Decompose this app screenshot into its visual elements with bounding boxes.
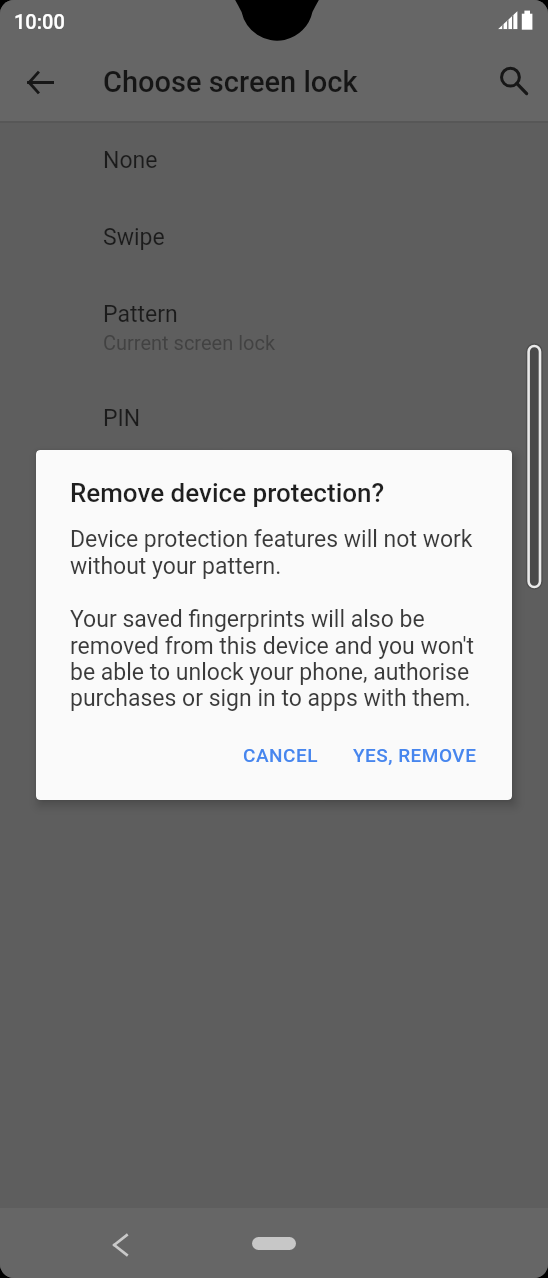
button[interactable]: Password <box>0 457 548 534</box>
button[interactable]: None <box>0 122 548 199</box>
staticText: Device protection features will not work… <box>70 526 476 580</box>
button[interactable]: CANCEL <box>229 735 332 775</box>
button[interactable]: YES, REMOVE <box>339 735 491 775</box>
staticText: CANCEL <box>243 744 318 766</box>
staticText: 10:00 <box>14 10 65 33</box>
staticText: Your saved fingerprints will also be rem… <box>70 606 476 712</box>
staticText: None <box>103 147 158 174</box>
staticText: Pattern <box>103 301 178 328</box>
staticText: Password <box>103 482 205 509</box>
button[interactable]: Back <box>98 1221 142 1265</box>
staticText: Current screen lock <box>103 331 276 354</box>
staticText: Remove device protection? <box>70 478 385 508</box>
staticText: YES, REMOVE <box>353 744 477 766</box>
button[interactable]: Pattern <box>0 275 548 380</box>
button[interactable]: Search <box>488 55 540 107</box>
button[interactable]: Swipe <box>0 199 548 275</box>
staticText: Swipe <box>103 224 165 251</box>
staticText: PIN <box>103 405 141 432</box>
button[interactable]: Home <box>252 1237 296 1250</box>
button[interactable]: PIN <box>0 380 548 457</box>
staticText: Choose screen lock <box>103 65 358 99</box>
button[interactable]: Navigate up <box>14 58 66 110</box>
